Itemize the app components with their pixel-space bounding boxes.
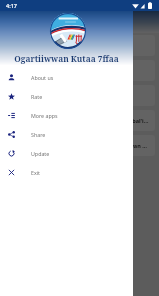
button[interactable]: Boqonnaa 1: Lakkoofsaa fi hojiiwwan [4,60,155,81]
staticText: Share [31,131,46,138]
button[interactable]: Boqonnaa 4: Sarara, dalga qixxee fi dalg… [4,135,155,156]
staticText: Update [31,150,50,157]
button[interactable]: Boqonnaa 3: Safartuuwwan haga qabiyyee f… [4,110,155,131]
button[interactable]: Update [0,144,133,163]
button[interactable]: Seensa [4,35,155,56]
button[interactable]: Rate [0,87,133,106]
staticText: Boqonnaa 4: Sarara, dalga qixxee fi dalg… [9,142,150,149]
button[interactable]: About us [0,68,133,87]
button[interactable]: Share [0,125,133,144]
button[interactable]: More apps [0,106,133,125]
staticText: Seensa [9,42,29,49]
button[interactable]: Exit [0,163,133,182]
staticText: Ogartiiwwan Kutaa 7ffaa [14,53,119,64]
staticText: Boqonnaa 2: Heerregaa [9,92,74,99]
staticText: More apps [31,112,58,119]
staticText: Exit [31,169,41,176]
staticText: 4:17 [6,2,17,9]
button[interactable]: Boqonnaa 2: Heerregaa [4,85,155,106]
staticText: Rate [31,93,43,100]
staticText: About us [31,74,54,81]
staticText: Boqonnaa 3: Safartuuwwan haga qabiyyee f… [9,117,150,124]
